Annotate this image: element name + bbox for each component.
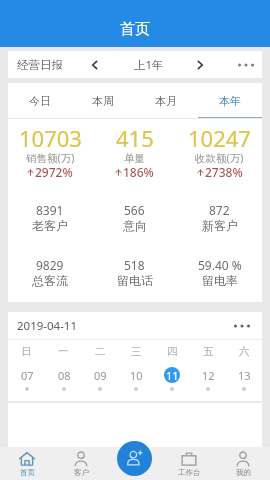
- staticText: 销售额(万): [26, 151, 75, 165]
- staticText: 12: [202, 368, 215, 383]
- staticText: 415: [116, 123, 154, 153]
- button[interactable]: 11: [154, 367, 190, 391]
- staticText: 10247: [188, 123, 251, 153]
- button[interactable]: 今日: [8, 83, 71, 118]
- staticText: 一: [58, 345, 69, 358]
- button[interactable]: 工作台: [162, 447, 216, 480]
- button[interactable]: 07: [8, 367, 45, 391]
- button[interactable]: 我的: [216, 447, 270, 480]
- button[interactable]: 本月: [134, 83, 198, 118]
- staticText: 收款额(万): [195, 151, 244, 165]
- staticText: 日: [21, 345, 32, 358]
- staticText: 上1年: [134, 57, 164, 73]
- button[interactable]: 本年: [198, 83, 262, 118]
- button[interactable]: 08: [45, 367, 82, 391]
- staticText: 本月: [155, 94, 177, 108]
- staticText: 工作台: [178, 468, 201, 477]
- staticText: 186%: [123, 164, 154, 180]
- staticText: 872: [209, 202, 230, 218]
- staticText: 三: [131, 345, 142, 358]
- button[interactable]: Next period: [190, 55, 210, 75]
- staticText: 新客户: [202, 218, 238, 233]
- staticText: 2019-04-11: [17, 318, 78, 334]
- staticText: 经营日报: [17, 58, 63, 72]
- staticText: 留电率: [202, 273, 238, 288]
- button[interactable]: 经营日报: [8, 51, 262, 78]
- staticText: 07: [21, 368, 34, 383]
- staticText: 二: [95, 345, 106, 358]
- button[interactable]: 客户: [54, 447, 108, 480]
- staticText: 9829: [36, 257, 64, 273]
- button[interactable]: 13: [226, 367, 262, 391]
- staticText: 11: [166, 368, 179, 383]
- button[interactable]: 12: [190, 367, 226, 391]
- staticText: 10: [130, 368, 143, 383]
- button[interactable]: Previous period: [85, 55, 105, 75]
- staticText: 五: [203, 345, 214, 358]
- staticText: 首页: [20, 468, 35, 477]
- button[interactable]: Add customer: [117, 441, 152, 476]
- staticText: 总客流: [32, 273, 68, 288]
- button[interactable]: 首页: [0, 447, 54, 480]
- staticText: 六: [239, 345, 250, 358]
- staticText: 本年: [219, 94, 241, 108]
- staticText: 518: [124, 257, 145, 273]
- staticText: 四: [167, 345, 178, 358]
- staticText: 本周: [92, 94, 114, 108]
- staticText: 8391: [36, 202, 64, 218]
- button[interactable]: 09: [82, 367, 118, 391]
- staticText: 59.40 %: [198, 257, 242, 273]
- staticText: 留电话: [117, 273, 153, 288]
- staticText: 今日: [29, 94, 51, 108]
- button[interactable]: 2019-04-11: [8, 312, 262, 339]
- staticText: 10703: [19, 123, 82, 153]
- staticText: 09: [94, 368, 107, 383]
- staticText: 13: [238, 368, 251, 383]
- staticText: 首页: [120, 20, 150, 39]
- staticText: 客户: [74, 468, 89, 477]
- button[interactable]: 10: [118, 367, 154, 391]
- staticText: 08: [58, 368, 71, 383]
- staticText: 2972%: [35, 164, 73, 180]
- button[interactable]: More options: [236, 55, 256, 75]
- button[interactable]: 本周: [71, 83, 134, 118]
- staticText: 566: [124, 202, 145, 218]
- button[interactable]: More options: [232, 316, 252, 336]
- staticText: 我的: [236, 468, 251, 477]
- staticText: 意向: [123, 218, 147, 233]
- staticText: 2738%: [205, 164, 243, 180]
- staticText: 单量: [124, 152, 145, 165]
- staticText: 老客户: [32, 218, 68, 233]
